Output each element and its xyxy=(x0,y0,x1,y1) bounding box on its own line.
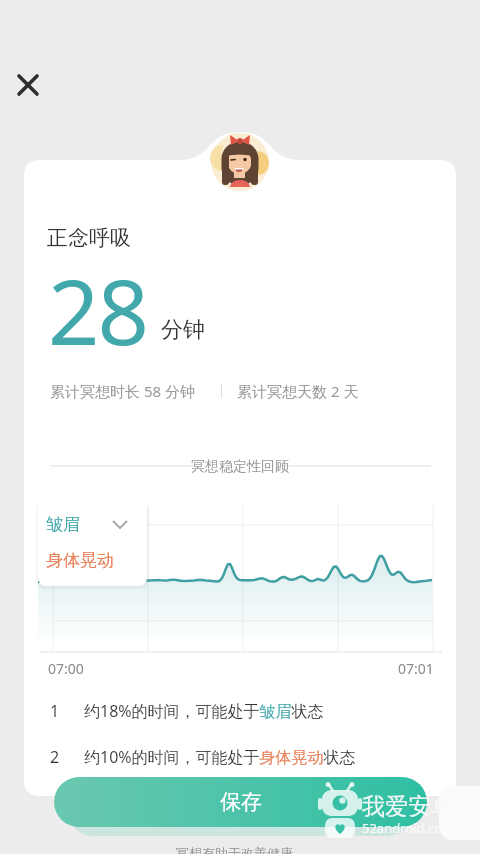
staticText: 约10%的时间，可能处于身体晃动状态 xyxy=(84,746,356,768)
staticText: 07:01 xyxy=(398,659,434,678)
staticText: 身体晃动 xyxy=(46,550,114,571)
staticText: 07:00 xyxy=(48,659,84,678)
staticText: 保存 xyxy=(220,789,262,815)
staticText: 我爱安卓 xyxy=(362,792,454,821)
staticText: 28 xyxy=(48,249,147,372)
staticText: 52android.com xyxy=(362,819,455,837)
staticText: 累计冥想时长 58 分钟 xyxy=(50,381,195,401)
staticText: 累计冥想天数 2 天 xyxy=(237,381,359,401)
staticText: 皱眉 xyxy=(46,514,80,535)
staticText: 冥想有助于改善健康 xyxy=(176,845,293,854)
staticText: 1 xyxy=(50,700,60,722)
button[interactable] xyxy=(10,67,46,103)
button[interactable]: 保存 xyxy=(54,777,427,827)
button[interactable]: 皱眉 xyxy=(38,500,147,586)
staticText: 正念呼吸 xyxy=(47,225,131,251)
staticText: 2 xyxy=(50,746,60,768)
staticText: 分钟 xyxy=(161,316,205,344)
staticText: 冥想稳定性回顾 xyxy=(191,458,289,476)
staticText: 约18%的时间，可能处于皱眉状态 xyxy=(84,700,324,722)
